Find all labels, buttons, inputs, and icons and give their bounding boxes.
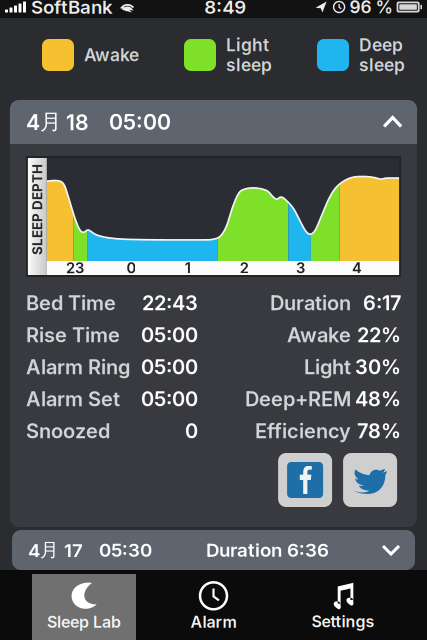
staticText: Bed Time <box>26 291 116 315</box>
button[interactable]: Share on Facebook <box>278 453 332 507</box>
staticText: 6:17 <box>363 291 401 315</box>
button[interactable]: 4月 18 <box>10 100 417 144</box>
staticText: SLEEP DEPTH <box>0 201 83 217</box>
staticText: Awake <box>287 323 351 347</box>
staticText: 23 <box>66 259 84 277</box>
button[interactable]: 4月 17 <box>12 530 415 570</box>
staticText: Duration 6:36 <box>206 539 329 561</box>
staticText: sleep <box>359 54 405 75</box>
staticText: Alarm Set <box>26 387 120 411</box>
staticText: 3 <box>296 259 305 277</box>
staticText: 05:00 <box>109 109 171 135</box>
button[interactable]: Share on Twitter <box>343 453 397 507</box>
staticText: Settings <box>311 612 374 631</box>
staticText: 22% <box>357 323 401 347</box>
staticText: 48% <box>355 387 401 411</box>
staticText: SoftBank <box>31 0 113 18</box>
staticText: Alarm <box>190 612 236 632</box>
button[interactable]: Settings <box>291 574 395 640</box>
staticText: Deep <box>359 34 403 55</box>
staticText: Duration <box>270 291 351 315</box>
staticText: 4月 18 <box>26 109 89 135</box>
staticText: 1 <box>185 259 191 277</box>
button[interactable]: Sleep Lab <box>32 574 136 640</box>
staticText: 05:30 <box>99 539 152 561</box>
staticText: 4月 17 <box>28 538 83 562</box>
button[interactable]: Alarm <box>161 574 265 640</box>
staticText: 78% <box>357 419 401 443</box>
staticText: sleep <box>226 54 272 75</box>
staticText: Snoozed <box>26 419 110 443</box>
staticText: Efficiency <box>255 419 351 443</box>
staticText: 2 <box>240 259 249 277</box>
staticText: 22:43 <box>142 291 198 315</box>
staticText: Sleep Lab <box>47 612 121 632</box>
staticText: 05:00 <box>141 323 198 347</box>
staticText: 8:49 <box>204 0 246 18</box>
staticText: Alarm Ring <box>26 355 130 379</box>
staticText: 05:00 <box>141 387 198 411</box>
staticText: Deep+REM <box>245 387 351 411</box>
staticText: 05:00 <box>141 355 198 379</box>
staticText: 4 <box>352 259 362 277</box>
staticText: 96 % <box>350 0 393 17</box>
staticText: Light <box>226 34 269 55</box>
staticText: 0 <box>185 419 198 443</box>
staticText: 0 <box>126 259 136 277</box>
staticText: Light <box>304 355 351 379</box>
staticText: 30% <box>355 355 401 379</box>
staticText: Rise Time <box>26 323 120 347</box>
staticText: Awake <box>84 44 139 65</box>
